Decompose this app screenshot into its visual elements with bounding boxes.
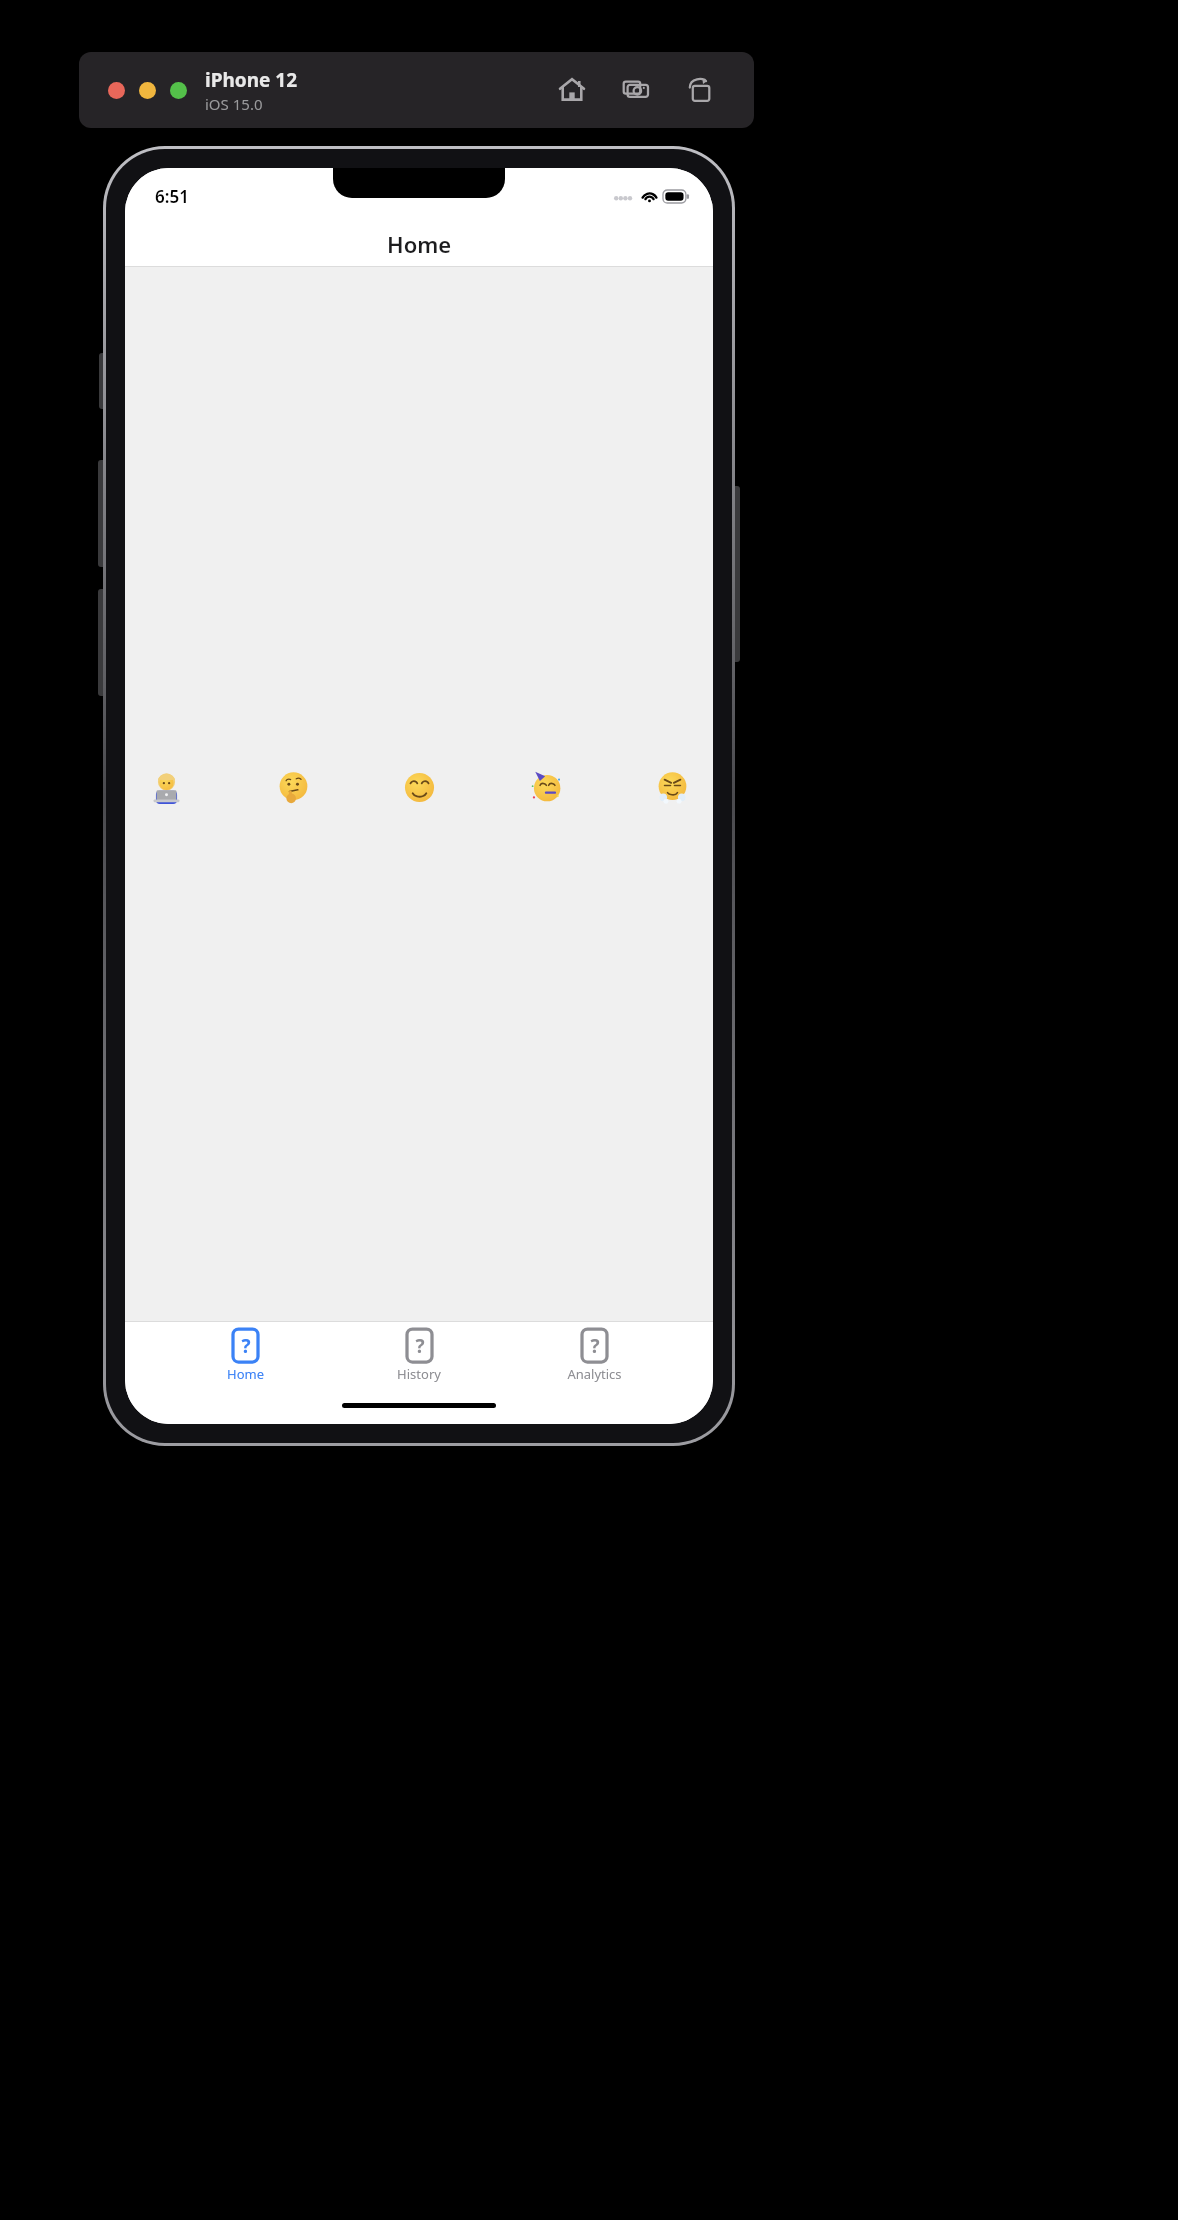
button[interactable]: Close (108, 82, 125, 99)
button[interactable]: Emoji (651, 766, 693, 808)
staticText: iPhone 12 (205, 67, 298, 93)
button[interactable]: Emoji (145, 766, 187, 808)
staticText: Analytics (567, 1365, 622, 1383)
button[interactable]: Emoji (272, 766, 314, 808)
button[interactable]: Rotate (680, 70, 720, 110)
staticText: ? (590, 1333, 600, 1359)
staticText: Home (227, 1365, 264, 1383)
button[interactable]: Minimise (139, 82, 156, 99)
button[interactable]: ? (539, 1329, 649, 1383)
staticText: ? (241, 1333, 251, 1359)
button[interactable]: Zoom (170, 82, 187, 99)
staticText: 6:51 (155, 185, 189, 208)
button[interactable]: ? (364, 1329, 474, 1383)
staticText: History (397, 1365, 441, 1383)
staticText: ? (415, 1333, 425, 1359)
staticText: Home (387, 229, 452, 259)
button[interactable]: Screenshot (616, 70, 656, 110)
button[interactable]: Emoji (398, 766, 440, 808)
button[interactable]: Emoji (525, 766, 567, 808)
staticText: iOS 15.0 (205, 94, 263, 114)
button[interactable]: Home (552, 70, 592, 110)
button[interactable]: ? (190, 1329, 300, 1383)
